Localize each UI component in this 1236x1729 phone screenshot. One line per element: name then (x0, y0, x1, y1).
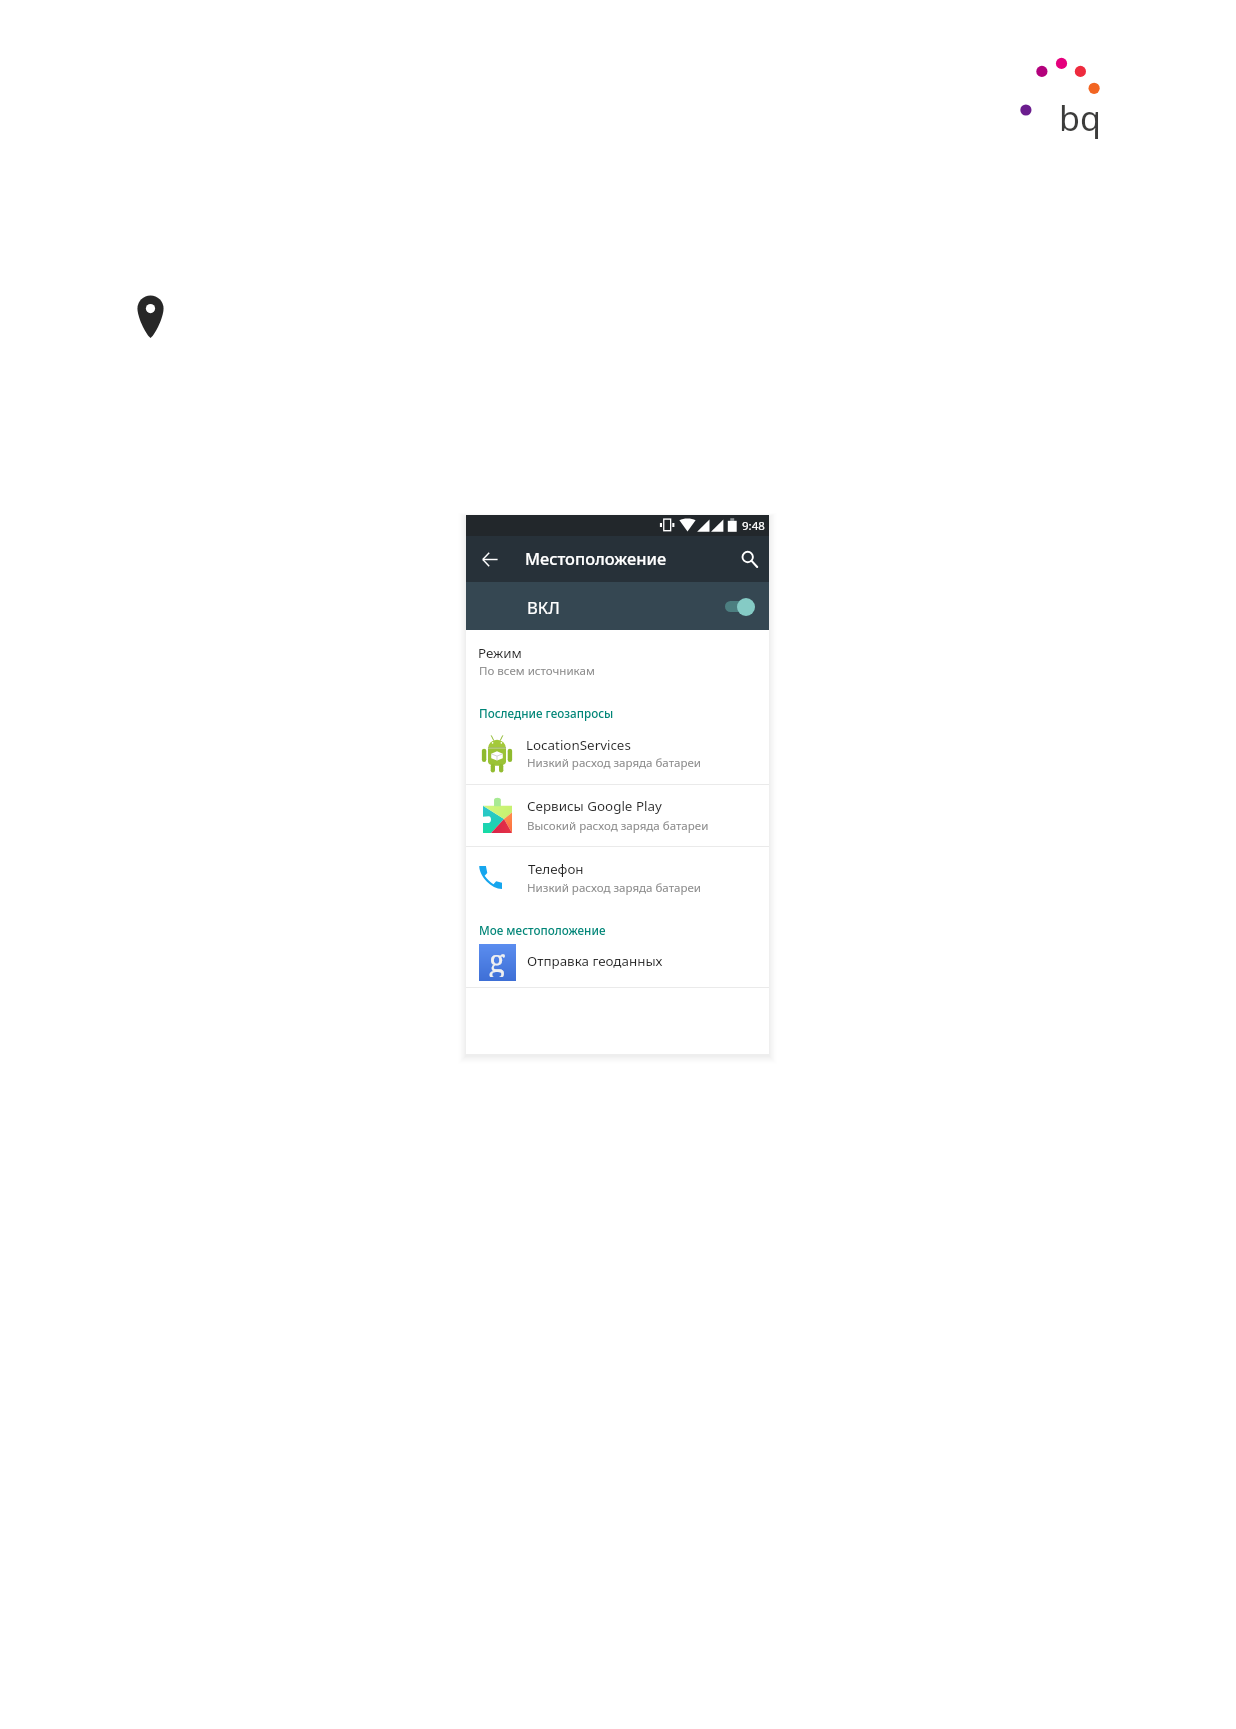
staticText: По всем источникам (479, 663, 595, 679)
staticText: Сервисы Google Play (527, 797, 662, 815)
button[interactable]: g (466, 940, 769, 992)
staticText: 9:48 (742, 518, 765, 534)
button[interactable]: Режим (466, 630, 769, 692)
staticText: Последние геозапросы (479, 705, 614, 721)
button[interactable]: Назад (468, 537, 512, 581)
button[interactable]: Поиск (736, 550, 760, 572)
staticText: Отправка геоданных (527, 952, 663, 970)
staticText: bq (1059, 95, 1101, 141)
staticText: Местоположение (525, 547, 667, 569)
staticText: Режим (478, 644, 522, 662)
staticText: Мое местоположение (479, 922, 606, 938)
staticText: Высокий расход заряда батареи (527, 818, 709, 834)
button[interactable]: LocationServices (466, 727, 769, 784)
staticText: LocationServices (526, 736, 631, 754)
button[interactable]: Сервисы Google Play (466, 785, 769, 845)
staticText: Телефон (528, 860, 584, 878)
staticText: Низкий расход заряда батареи (527, 755, 702, 771)
button[interactable]: Определение местоположения: ВКЛ (466, 582, 769, 630)
button[interactable]: Телефон (466, 846, 769, 906)
staticText: ВКЛ (527, 596, 560, 619)
staticText: Низкий расход заряда батареи (527, 880, 702, 896)
staticText: g (489, 940, 506, 977)
